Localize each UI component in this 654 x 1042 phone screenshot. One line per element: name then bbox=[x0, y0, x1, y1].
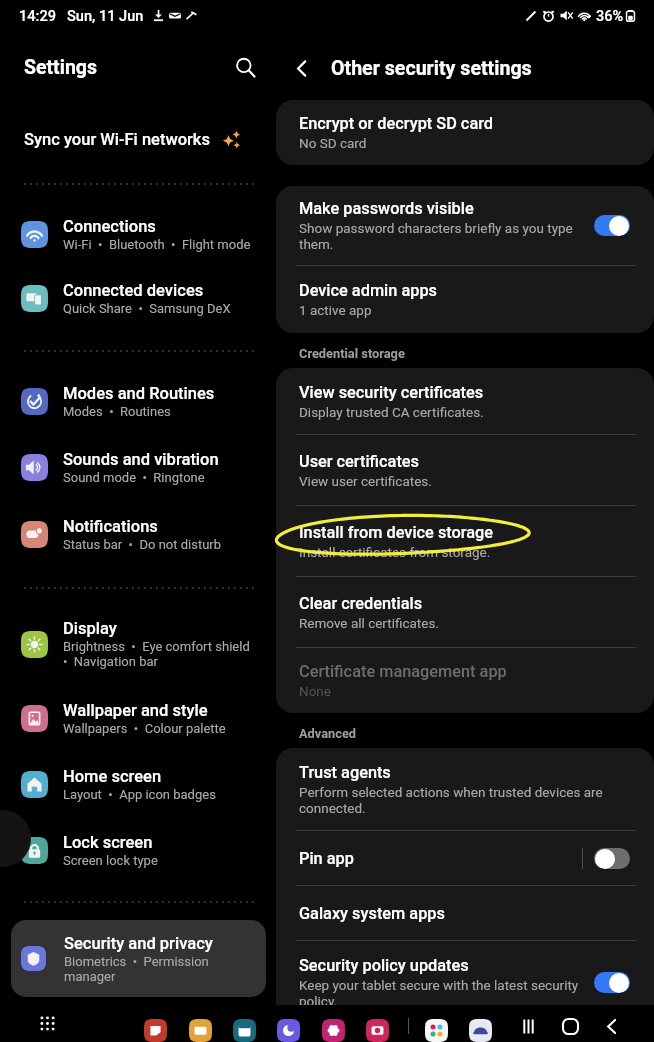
button[interactable]: Sounds and vibration bbox=[0, 437, 276, 497]
button[interactable]: Lock screen bbox=[0, 820, 276, 880]
staticText: them. bbox=[299, 236, 334, 252]
staticText: Make passwords visible bbox=[299, 199, 474, 218]
staticText: None bbox=[299, 683, 331, 699]
staticText: Perform selected actions when trusted de… bbox=[299, 784, 603, 800]
staticText: Install from device storage bbox=[299, 523, 494, 542]
button[interactable]: Pin app bbox=[276, 831, 654, 885]
staticText: Wi-Fi • Bluetooth • Flight mode bbox=[63, 237, 251, 252]
staticText: policy. bbox=[299, 993, 338, 1009]
staticText: Credential storage bbox=[299, 346, 405, 361]
button[interactable]: Make passwords visible bbox=[276, 186, 654, 265]
staticText: Show password characters briefly as you … bbox=[299, 220, 573, 236]
staticText: Screen lock type bbox=[63, 853, 158, 868]
button[interactable]: folder bbox=[189, 1019, 212, 1042]
button[interactable]: flower bbox=[322, 1019, 345, 1042]
button[interactable]: Toggle bbox=[594, 215, 630, 236]
button[interactable]: Notifications bbox=[0, 504, 276, 564]
staticText: manager bbox=[64, 969, 116, 984]
button[interactable]: Home screen bbox=[0, 754, 276, 814]
staticText: Galaxy system apps bbox=[299, 904, 445, 923]
button[interactable]: Back bbox=[284, 51, 318, 85]
button[interactable]: Apps bbox=[34, 1010, 60, 1036]
staticText: Keep your tablet secure with the latest … bbox=[299, 977, 579, 993]
staticText: 1 active app bbox=[299, 302, 372, 318]
button[interactable]: User certificates bbox=[276, 435, 654, 505]
button[interactable]: Connected devices bbox=[0, 268, 276, 328]
staticText: View user certificates. bbox=[299, 473, 432, 489]
button[interactable]: hat bbox=[469, 1019, 492, 1042]
staticText: Status bar • Do not disturb bbox=[63, 537, 222, 552]
button[interactable]: Security policy updates bbox=[276, 941, 654, 1023]
staticText: No SD card bbox=[299, 135, 367, 151]
staticText: Clear credentials bbox=[299, 594, 423, 613]
staticText: Remove all certificates. bbox=[299, 615, 439, 631]
staticText: Wallpapers • Colour palette bbox=[63, 721, 226, 736]
staticText: Notifications bbox=[63, 517, 158, 536]
staticText: Quick Share • Samsung DeX bbox=[63, 301, 231, 316]
button[interactable]: Trust agents bbox=[276, 748, 654, 830]
staticText: Wallpaper and style bbox=[63, 701, 208, 720]
staticText: Home screen bbox=[63, 767, 162, 786]
staticText: 36% bbox=[596, 7, 624, 24]
button[interactable]: Edit bbox=[0, 810, 31, 867]
staticText: • Navigation bar bbox=[63, 654, 158, 669]
button[interactable]: cam bbox=[366, 1019, 389, 1042]
staticText: Display bbox=[63, 619, 117, 638]
button[interactable]: View security certificates bbox=[276, 368, 654, 434]
button[interactable]: slack bbox=[425, 1019, 448, 1042]
staticText: Settings bbox=[24, 56, 97, 79]
staticText: Sounds and vibration bbox=[63, 450, 219, 469]
staticText: Connections bbox=[63, 217, 156, 236]
button[interactable]: Home bbox=[555, 1011, 585, 1041]
staticText: View security certificates bbox=[299, 383, 484, 402]
staticText: connected. bbox=[299, 800, 366, 816]
staticText: User certificates bbox=[299, 452, 420, 471]
staticText: Modes and Routines bbox=[63, 384, 215, 403]
staticText: Security policy updates bbox=[299, 956, 469, 975]
button[interactable]: Display bbox=[0, 614, 276, 674]
button[interactable]: Connections bbox=[0, 204, 276, 264]
button[interactable]: Device admin apps bbox=[276, 266, 654, 333]
button[interactable]: Back bbox=[596, 1011, 626, 1041]
staticText: Trust agents bbox=[299, 763, 391, 782]
staticText: Modes • Routines bbox=[63, 404, 171, 419]
button[interactable]: Search bbox=[229, 51, 261, 83]
staticText: Brightness • Eye comfort shield bbox=[63, 639, 250, 654]
staticText: Install certificates from storage. bbox=[299, 544, 491, 560]
staticText: Biometrics • Permission bbox=[64, 954, 209, 969]
button[interactable]: Modes and Routines bbox=[0, 371, 276, 431]
staticText: Security and privacy bbox=[64, 934, 213, 953]
staticText: Advanced bbox=[299, 726, 357, 741]
staticText: Device admin apps bbox=[299, 281, 437, 300]
staticText: Lock screen bbox=[63, 833, 153, 852]
button[interactable]: Sync your Wi-Fi networks bbox=[0, 117, 276, 161]
button[interactable]: Clear credentials bbox=[276, 577, 654, 647]
button[interactable]: Install from device storage bbox=[276, 506, 654, 576]
button[interactable]: Certificate management app bbox=[276, 648, 654, 713]
staticText: Pin app bbox=[299, 849, 354, 868]
staticText: Sync your Wi-Fi networks bbox=[24, 130, 211, 149]
staticText: Certificate management app bbox=[299, 662, 507, 681]
button[interactable]: Toggle bbox=[594, 972, 630, 993]
staticText: Connected devices bbox=[63, 281, 204, 300]
staticText: Sound mode • Ringtone bbox=[63, 470, 205, 485]
button[interactable]: Galaxy system apps bbox=[276, 886, 654, 940]
button[interactable]: note bbox=[144, 1019, 167, 1042]
staticText: Layout • App icon badges bbox=[63, 787, 216, 802]
button[interactable]: Encrypt or decrypt SD card bbox=[276, 100, 654, 165]
button[interactable]: Toggle bbox=[594, 848, 630, 869]
staticText: Other security settings bbox=[331, 57, 532, 80]
button[interactable]: Recents bbox=[513, 1011, 543, 1041]
button[interactable]: cal bbox=[233, 1019, 256, 1042]
button[interactable]: Security and privacy bbox=[11, 920, 266, 997]
staticText: Encrypt or decrypt SD card bbox=[299, 114, 494, 133]
staticText: Display trusted CA certificates. bbox=[299, 404, 484, 420]
staticText: Sun, 11 Jun bbox=[67, 7, 144, 24]
button[interactable]: Wallpaper and style bbox=[0, 688, 276, 748]
staticText: 14:29 bbox=[19, 7, 57, 24]
button[interactable]: net bbox=[277, 1019, 300, 1042]
